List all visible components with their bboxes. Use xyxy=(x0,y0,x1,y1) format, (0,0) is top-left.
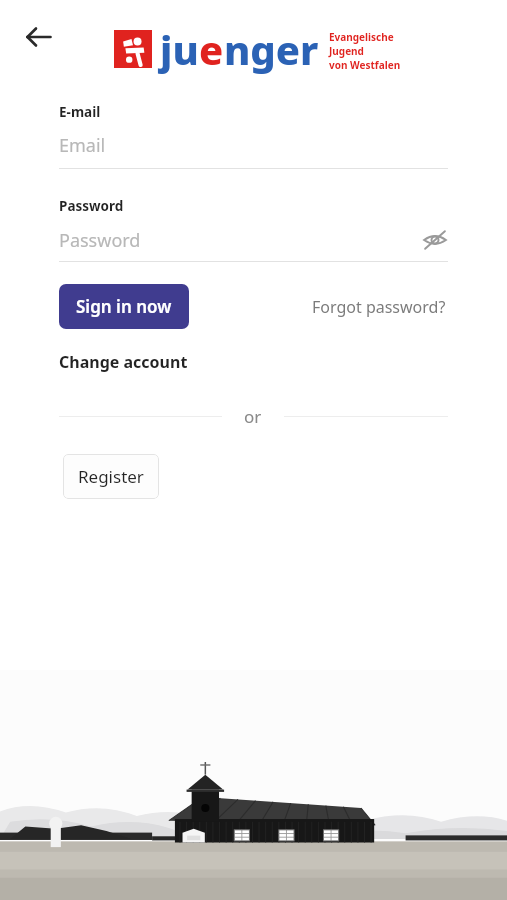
staticText: Password xyxy=(59,228,141,253)
staticText: von Westfalen xyxy=(329,58,401,72)
staticText: Email xyxy=(59,133,106,158)
staticText: Register xyxy=(78,465,144,488)
staticText: Password xyxy=(59,197,124,215)
staticText: ju xyxy=(160,22,199,76)
button[interactable]: Sign in now xyxy=(59,284,189,329)
button[interactable]: Change account xyxy=(59,347,188,377)
staticText: E-mail xyxy=(59,103,101,121)
staticText: Change account xyxy=(59,351,188,373)
staticText: Sign in now xyxy=(76,295,172,318)
staticText: e xyxy=(199,22,224,76)
staticText: Jugend xyxy=(329,44,364,58)
staticText: or xyxy=(244,405,262,428)
staticText: Evangelische xyxy=(329,30,394,44)
button[interactable]: Back xyxy=(18,16,60,58)
button[interactable]: Register xyxy=(63,454,159,499)
button[interactable]: Show password xyxy=(422,227,448,253)
staticText: Forgot password? xyxy=(312,296,446,318)
staticText: nger xyxy=(224,22,319,76)
button[interactable]: Email xyxy=(59,133,448,169)
button[interactable]: Forgot password? xyxy=(310,290,448,324)
button[interactable]: Password xyxy=(59,227,448,262)
